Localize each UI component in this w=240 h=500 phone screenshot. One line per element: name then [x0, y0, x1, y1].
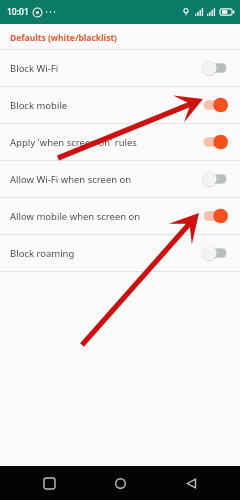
- button[interactable]: Block roaming: [0, 235, 240, 271]
- button[interactable]: Allow mobile when screen on: [0, 198, 240, 234]
- staticText: Block mobile: [10, 99, 68, 112]
- staticText: 10:01: [7, 6, 29, 18]
- staticText: Apply 'when screen on' rules: [10, 136, 137, 149]
- button[interactable]: Toggle off: [201, 245, 229, 261]
- button[interactable]: Allow Wi-Fi when screen on: [0, 161, 240, 197]
- button[interactable]: Recents: [27, 466, 71, 500]
- button[interactable]: Back: [169, 466, 213, 500]
- staticText: Defaults (white/blacklist): [10, 32, 117, 44]
- staticText: Allow mobile when screen on: [10, 210, 141, 223]
- button[interactable]: Toggle off: [201, 60, 229, 76]
- button[interactable]: Toggle on: [201, 134, 229, 150]
- button[interactable]: Apply 'when screen on' rules: [0, 124, 240, 160]
- staticText: Block Wi-Fi: [10, 62, 59, 75]
- button[interactable]: Toggle on: [201, 208, 229, 224]
- button[interactable]: Block mobile: [0, 87, 240, 123]
- staticText: Block roaming: [10, 247, 75, 260]
- button[interactable]: Toggle on: [201, 97, 229, 113]
- button[interactable]: Home: [98, 466, 142, 500]
- button[interactable]: Toggle off: [201, 171, 229, 187]
- button[interactable]: Block Wi-Fi: [0, 50, 240, 86]
- staticText: Allow Wi-Fi when screen on: [10, 173, 132, 186]
